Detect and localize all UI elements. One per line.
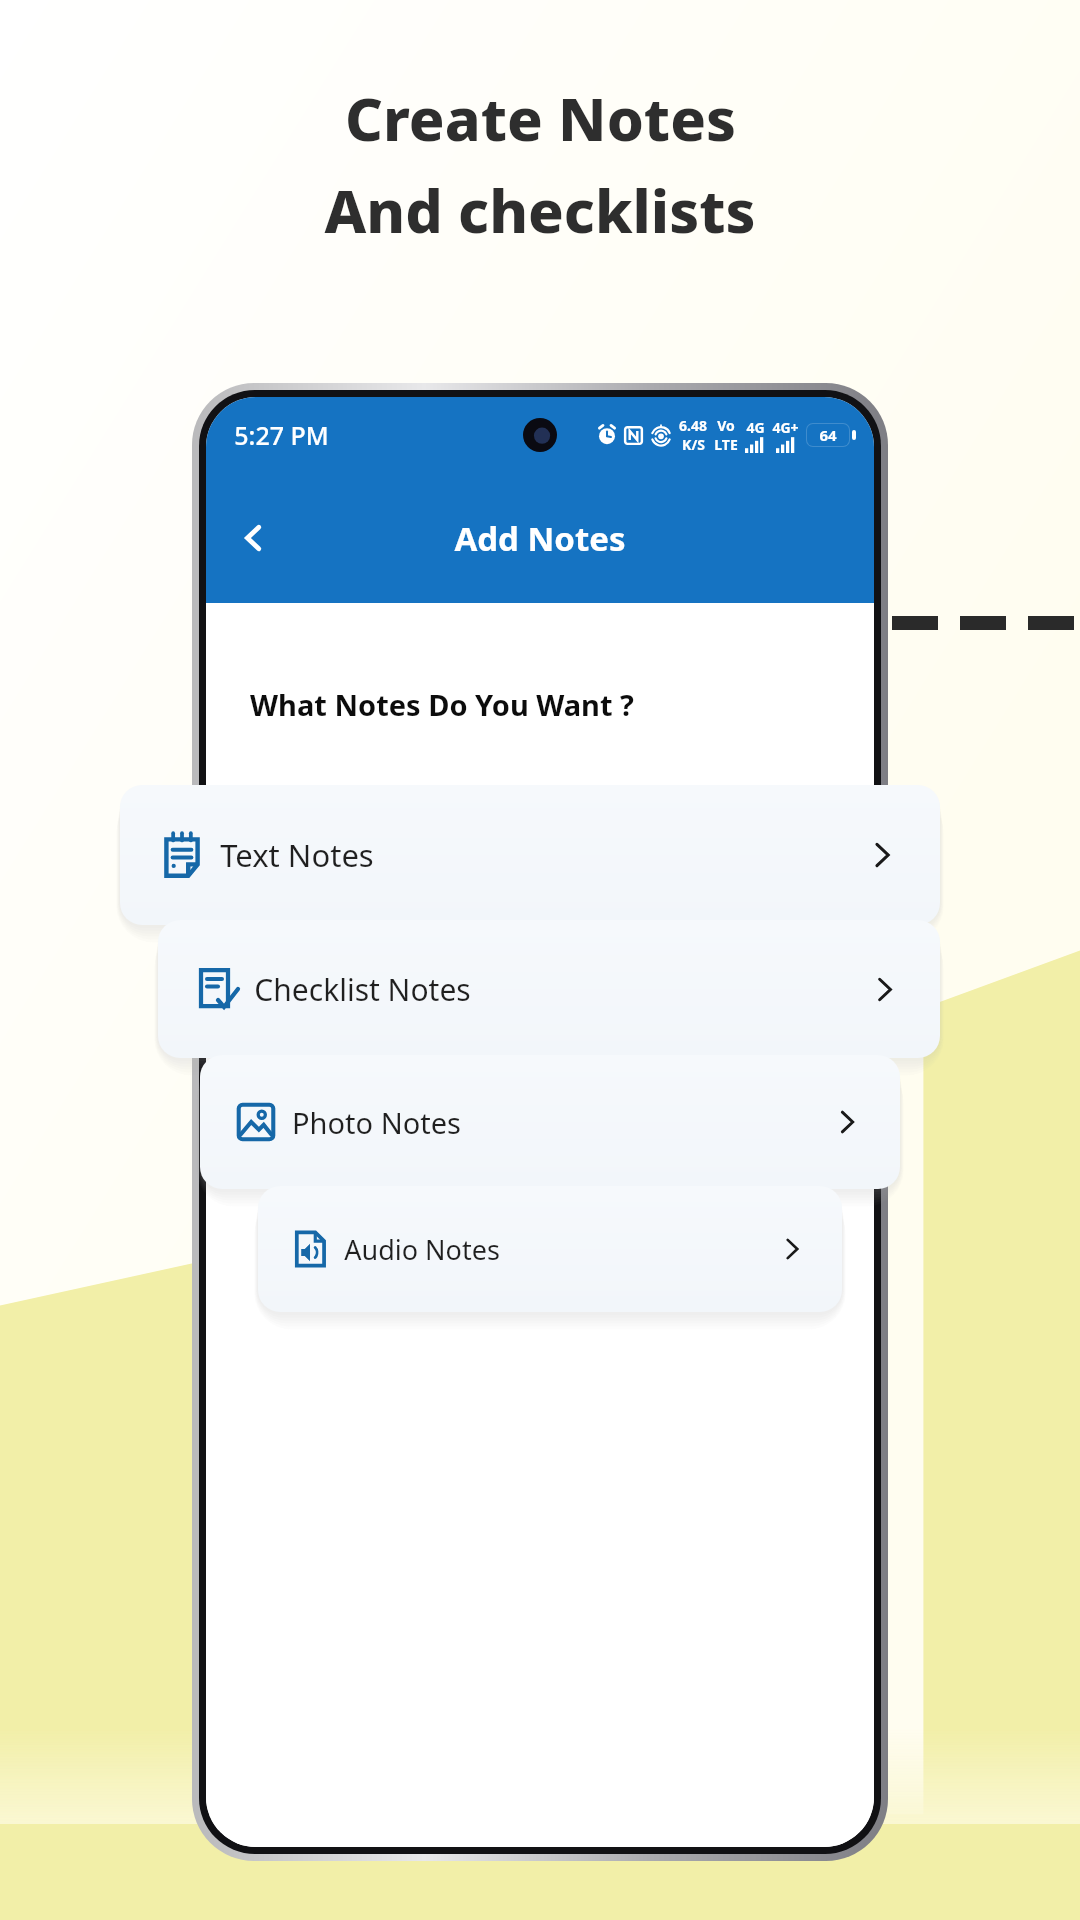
button[interactable]: Checklist Notes bbox=[158, 920, 940, 1058]
staticText: 4G bbox=[746, 418, 765, 437]
staticText: LTE bbox=[714, 435, 738, 454]
staticText: And checklists bbox=[324, 170, 756, 250]
staticText: K/S bbox=[682, 435, 705, 454]
staticText: Audio Notes bbox=[344, 1231, 500, 1268]
button[interactable]: Back bbox=[222, 506, 286, 570]
staticText: Vo bbox=[717, 416, 735, 435]
staticText: 64 bbox=[819, 425, 837, 445]
button[interactable]: Audio Notes bbox=[258, 1186, 842, 1312]
button[interactable]: Text Notes bbox=[120, 785, 940, 925]
staticText: Text Notes bbox=[220, 834, 374, 876]
staticText: Checklist Notes bbox=[254, 969, 471, 1010]
staticText: Create Notes bbox=[345, 78, 736, 158]
staticText: Add Notes bbox=[454, 516, 626, 561]
staticText: 6.48 bbox=[679, 416, 707, 435]
staticText: 5:27 PM bbox=[234, 418, 329, 452]
staticText: 4G+ bbox=[772, 418, 799, 437]
staticText: Photo Notes bbox=[292, 1103, 461, 1142]
staticText: What Notes Do You Want ? bbox=[250, 685, 634, 724]
button[interactable]: Photo Notes bbox=[200, 1055, 900, 1189]
